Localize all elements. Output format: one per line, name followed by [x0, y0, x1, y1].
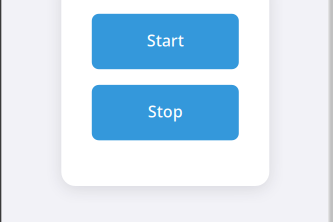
staticText: Start	[147, 30, 184, 51]
button[interactable]: Start	[92, 14, 239, 69]
staticText: Stop	[148, 101, 183, 122]
button[interactable]: Stop	[92, 85, 239, 140]
